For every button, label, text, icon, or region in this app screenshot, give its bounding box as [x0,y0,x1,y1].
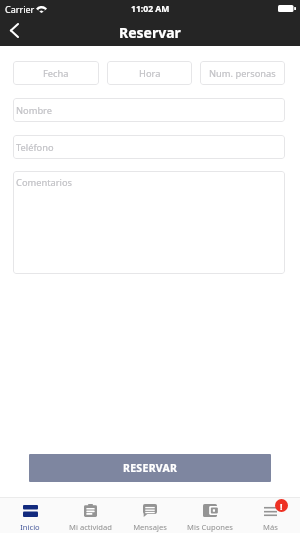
staticText: Reservar [119,23,181,42]
button[interactable]: Mis Cupones [180,498,240,533]
staticText: Mi actividad [69,522,112,532]
button[interactable]: Comentarios [13,171,285,274]
staticText: Fecha [43,67,69,80]
button[interactable]: Num. personas [200,61,285,85]
button[interactable]: RESERVAR [29,454,271,482]
staticText: Más [263,522,278,532]
staticText: Comentarios [16,176,73,189]
staticText: Mensajes [133,522,167,532]
staticText: Carrier [5,3,35,15]
button[interactable]: Hora [107,61,192,85]
staticText: Nombre [16,104,52,117]
staticText: ! [280,500,283,512]
button[interactable]: Mensajes [120,498,180,533]
button[interactable]: Nombre [13,98,285,122]
button[interactable]: Inicio [0,498,60,533]
button[interactable]: Teléfono [13,135,285,159]
button[interactable]: ! [240,498,300,533]
staticText: 11:02 AM [131,3,170,15]
staticText: Hora [139,67,161,80]
staticText: Num. personas [209,67,276,80]
staticText: Mis Cupones [187,522,233,532]
button[interactable]: Back [1,19,27,45]
staticText: Teléfono [16,141,54,154]
staticText: RESERVAR [123,461,178,475]
button[interactable]: Fecha [13,61,99,85]
staticText: Inicio [20,522,40,532]
button[interactable]: Mi actividad [60,498,120,533]
